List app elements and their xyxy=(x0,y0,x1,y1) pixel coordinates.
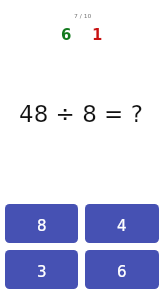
button[interactable]: Answer 3 xyxy=(5,250,78,289)
staticText: 6 xyxy=(61,26,72,43)
staticText: 1 xyxy=(92,26,103,43)
button[interactable]: Answer 4 xyxy=(85,204,159,243)
button[interactable]: Answer 6 xyxy=(85,250,159,289)
button[interactable]: Answer 8 xyxy=(5,204,78,243)
staticText: 4 xyxy=(117,217,127,234)
staticText: 8 xyxy=(37,217,47,234)
staticText: 7 / 10 xyxy=(74,12,92,19)
staticText: 48 ÷ 8 = ? xyxy=(19,101,143,128)
staticText: 6 xyxy=(117,263,127,280)
staticText: 3 xyxy=(37,263,47,280)
